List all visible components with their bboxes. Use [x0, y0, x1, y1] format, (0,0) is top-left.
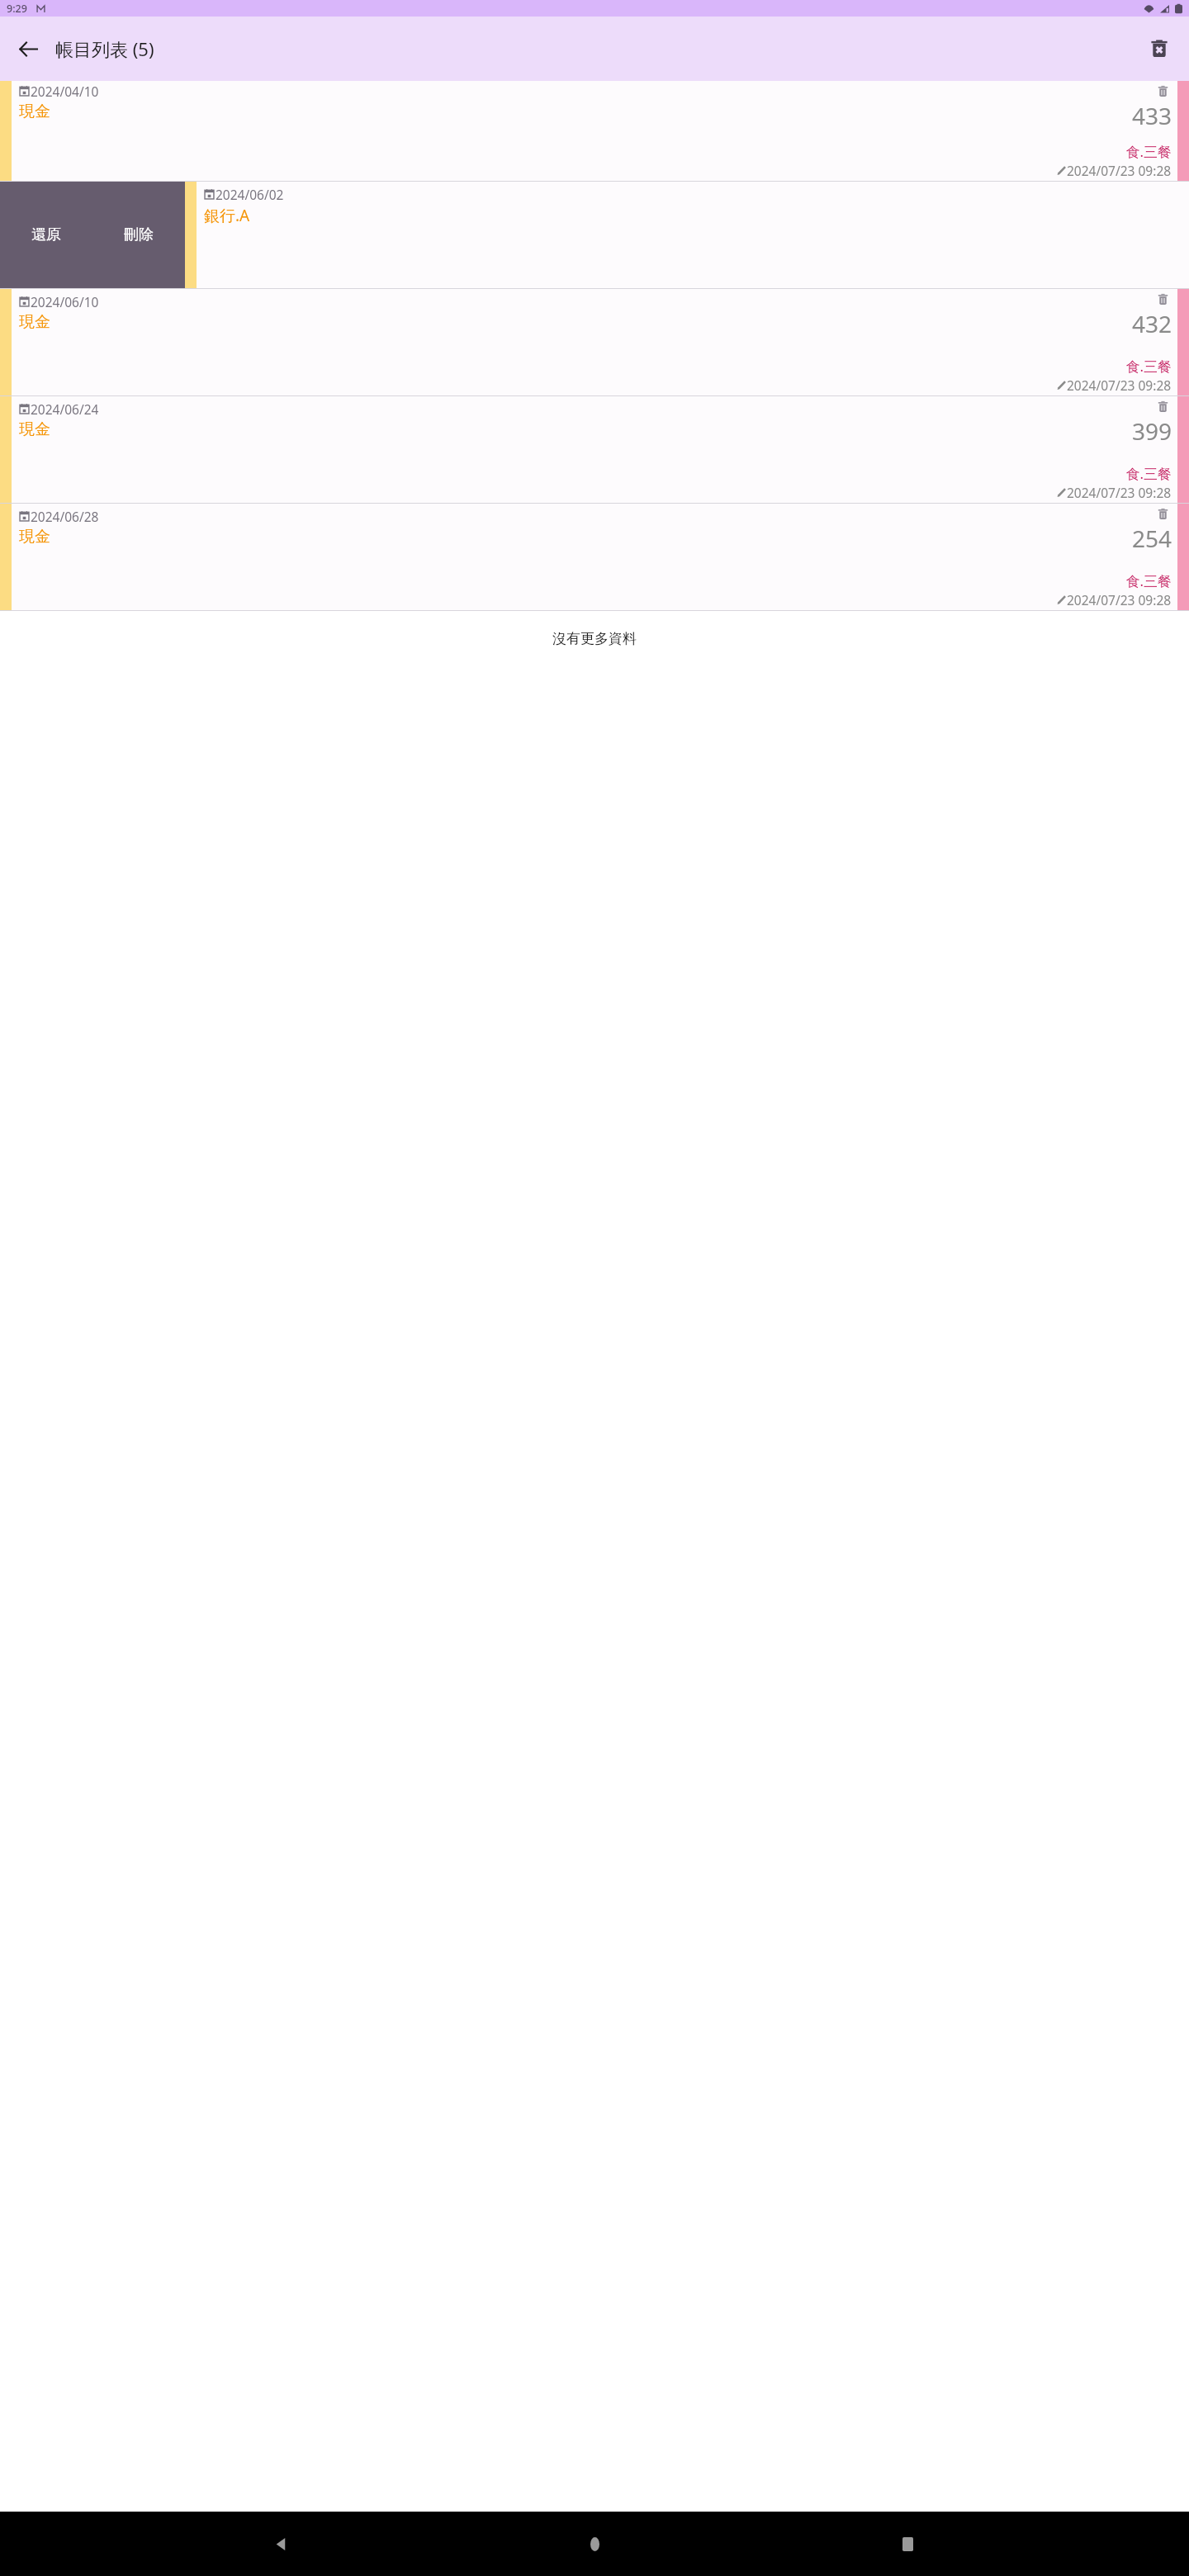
- button[interactable]: 2024/04/10: [0, 81, 1189, 181]
- staticText: 現金: [19, 312, 50, 332]
- button[interactable]: 2024/06/28: [0, 504, 1189, 610]
- staticText: 食.三餐: [1125, 142, 1172, 161]
- button[interactable]: Delete entry: [1153, 82, 1172, 100]
- staticText: 銀行.A: [204, 205, 250, 226]
- button[interactable]: Back: [8, 29, 48, 69]
- staticText: 刪除: [124, 225, 154, 244]
- staticText: 沒有更多資料: [552, 630, 637, 647]
- staticText: 254: [1131, 523, 1172, 554]
- staticText: 食.三餐: [1125, 571, 1172, 590]
- staticText: 現金: [19, 102, 50, 121]
- staticText: 2024/06/10: [31, 293, 99, 310]
- staticText: 還原: [31, 225, 61, 244]
- staticText: 2024/07/23 09:28: [1067, 484, 1172, 501]
- button[interactable]: Recents: [876, 2512, 939, 2575]
- button[interactable]: 2024/06/10: [0, 289, 1189, 395]
- button[interactable]: Delete entry: [1153, 290, 1172, 308]
- button[interactable]: Home: [563, 2512, 626, 2575]
- button[interactable]: Delete all: [1139, 29, 1179, 69]
- button[interactable]: 2024/06/02: [197, 182, 1189, 288]
- staticText: 現金: [19, 527, 50, 547]
- staticText: 2024/07/23 09:28: [1067, 376, 1172, 394]
- staticText: 帳目列表 (5): [55, 36, 154, 61]
- staticText: 2024/04/10: [31, 83, 99, 100]
- staticText: 2024/07/23 09:28: [1067, 591, 1172, 608]
- staticText: 食.三餐: [1125, 357, 1172, 376]
- staticText: 2024/07/23 09:28: [1067, 162, 1172, 179]
- staticText: 399: [1131, 415, 1172, 447]
- staticText: 2024/06/02: [216, 186, 284, 203]
- button[interactable]: 還原: [0, 182, 92, 288]
- staticText: 現金: [19, 419, 50, 439]
- staticText: 9:29: [7, 2, 27, 16]
- button[interactable]: Delete entry: [1153, 504, 1172, 523]
- staticText: 2024/06/28: [31, 508, 99, 525]
- button[interactable]: 刪除: [92, 182, 185, 288]
- staticText: 2024/06/24: [31, 400, 99, 418]
- button[interactable]: Back: [250, 2512, 313, 2575]
- button[interactable]: Delete entry: [1153, 397, 1172, 415]
- staticText: 食.三餐: [1125, 464, 1172, 483]
- staticText: 433: [1131, 100, 1172, 131]
- staticText: 432: [1131, 308, 1172, 339]
- button[interactable]: 2024/06/24: [0, 396, 1189, 503]
